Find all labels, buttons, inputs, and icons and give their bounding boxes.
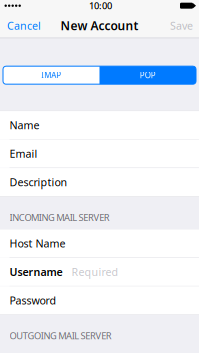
staticText: Host Name [9, 236, 65, 250]
staticText: Username [9, 265, 62, 279]
staticText: POP [140, 70, 156, 80]
button[interactable]: Email [0, 140, 199, 168]
staticText: 10:00 [89, 0, 112, 12]
button[interactable]: Username [0, 258, 199, 286]
staticText: OUTGOING MAIL SERVER [9, 329, 112, 342]
staticText: Name [9, 118, 39, 132]
staticText: INCOMING MAIL SERVER [9, 211, 110, 223]
button[interactable]: POP [99, 66, 196, 84]
staticText: Save [170, 19, 193, 33]
staticText: IMAP [41, 70, 61, 80]
button[interactable]: Description [0, 168, 199, 196]
button[interactable]: IMAP [3, 66, 99, 84]
staticText: Password [9, 293, 56, 307]
staticText: Email [9, 146, 37, 161]
button[interactable]: Cancel [0, 14, 46, 38]
staticText: Required [71, 265, 118, 279]
staticText: Cancel [7, 19, 41, 33]
staticText: New Account [60, 18, 138, 34]
button[interactable]: Host Name [0, 229, 199, 257]
button[interactable]: Password [0, 286, 199, 314]
button[interactable]: Name [0, 111, 199, 139]
staticText: Description [9, 175, 67, 189]
button[interactable]: Save [165, 14, 199, 38]
